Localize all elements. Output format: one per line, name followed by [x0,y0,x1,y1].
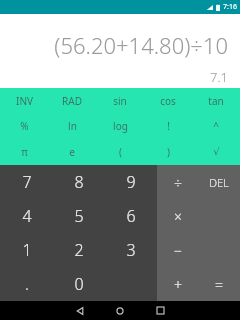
button[interactable]: cos [144,88,192,113]
button[interactable]: . [0,267,53,301]
button[interactable]: Back [60,301,100,320]
staticText: = [215,275,223,294]
staticText: 4 [22,205,32,227]
staticText: 7:16 [223,2,237,12]
staticText: ! [167,119,170,133]
button[interactable]: ( [96,139,144,165]
staticText: ( [119,145,122,159]
button[interactable]: = [198,267,240,301]
button[interactable]: 6 [105,199,157,233]
button[interactable]: log [96,113,144,139]
staticText: e [69,145,75,159]
button[interactable]: ÷ [157,165,198,199]
staticText: 9 [126,171,136,193]
staticText: . [25,273,29,295]
button[interactable]: 9 [105,165,157,199]
staticText: 8 [74,171,84,193]
button[interactable]: % [0,113,48,139]
staticText: tan [208,94,224,108]
staticText: ln [68,119,77,133]
button[interactable]: 3 [105,233,157,267]
staticText: ) [167,145,170,159]
staticText: (56.20+14.80)÷10 [54,30,228,60]
button[interactable]: INV [0,88,48,113]
button[interactable]: ^ [192,113,240,139]
staticText: 2 [74,239,84,261]
button[interactable]: 8 [53,165,105,199]
button[interactable]: π [0,139,48,165]
staticText: INV [16,94,33,108]
button[interactable]: tan [192,88,240,113]
staticText: × [174,207,182,226]
staticText: + [174,275,182,294]
button[interactable]: + [157,267,198,301]
button[interactable]: √ [192,139,240,165]
staticText: π [21,145,28,159]
button[interactable]: 1 [0,233,53,267]
staticText: − [174,241,182,260]
button[interactable]: Home [100,301,140,320]
staticText: 5 [74,205,84,227]
staticText: 1 [22,239,32,261]
button[interactable]: ! [144,113,192,139]
staticText: 7.1 [209,68,228,86]
staticText: DEL [209,175,229,190]
staticText: 3 [126,239,136,261]
button[interactable]: 5 [53,199,105,233]
button[interactable]: − [157,233,198,267]
staticText: cos [160,94,176,108]
button[interactable]: sin [96,88,144,113]
button[interactable]: DEL [198,165,240,199]
staticText: RAD [62,94,82,108]
staticText: ^ [213,119,219,133]
staticText: 0 [74,273,84,295]
button[interactable]: × [157,199,198,233]
button[interactable]: Recent apps [140,301,180,320]
staticText: sin [113,94,127,108]
button[interactable]: e [48,139,96,165]
button[interactable]: 4 [0,199,53,233]
staticText: log [113,119,128,133]
staticText: 6 [126,205,136,227]
button[interactable]: 7 [0,165,53,199]
button[interactable]: ) [144,139,192,165]
button[interactable]: 2 [53,233,105,267]
staticText: 7 [22,171,32,193]
staticText: ÷ [174,173,182,192]
button[interactable]: ln [48,113,96,139]
button[interactable]: 0 [53,267,105,301]
button[interactable]: RAD [48,88,96,113]
staticText: √ [213,146,220,158]
staticText: % [20,119,29,133]
